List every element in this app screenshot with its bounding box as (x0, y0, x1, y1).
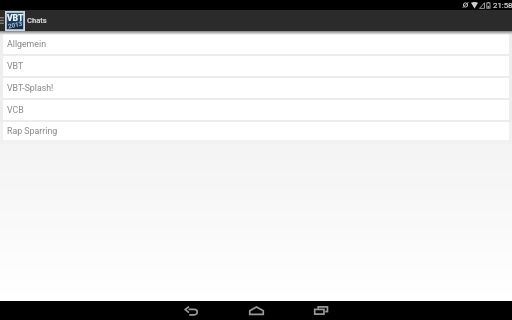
button[interactable]: VCB (3, 100, 509, 120)
button[interactable]: Recent apps (309, 303, 333, 318)
button[interactable]: Back (179, 303, 203, 318)
staticText: Rap Sparring (7, 126, 58, 136)
button[interactable]: Allgemein (3, 34, 509, 54)
button[interactable]: VBT 2013 logo (5, 11, 25, 31)
staticText: VBT (7, 61, 24, 71)
staticText: 2013 (7, 20, 24, 29)
button[interactable]: VBT (3, 56, 509, 76)
staticText: VBT (7, 13, 24, 23)
staticText: 21:58 (493, 1, 512, 10)
staticText: Chats (27, 16, 47, 25)
button[interactable]: Open navigation drawer (0, 10, 5, 31)
staticText: Allgemein (7, 39, 46, 49)
staticText: VCB (7, 105, 24, 115)
button[interactable]: Rap Sparring (3, 122, 509, 140)
staticText: VBT-Splash! (7, 83, 54, 93)
button[interactable]: VBT-Splash! (3, 78, 509, 98)
button[interactable]: Home (244, 303, 268, 318)
